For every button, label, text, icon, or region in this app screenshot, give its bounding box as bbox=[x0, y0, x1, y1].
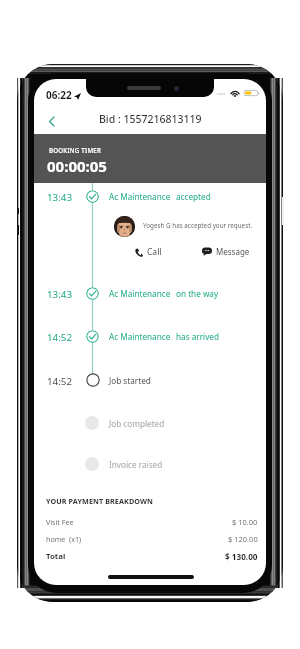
button[interactable]: Job completed bbox=[109, 418, 165, 429]
staticText: Invoice raised bbox=[109, 459, 163, 470]
staticText: BOOKING TIMER bbox=[49, 146, 102, 154]
staticText: Total bbox=[46, 551, 66, 562]
button[interactable]: Back bbox=[38, 106, 64, 136]
staticText: 06:22 bbox=[46, 88, 72, 102]
staticText: Ac Maintenance bbox=[109, 191, 171, 202]
staticText: $ 120.00 bbox=[228, 534, 258, 544]
staticText: 13:43 bbox=[47, 288, 73, 301]
staticText: YOUR PAYMENT BREAKDOWN bbox=[46, 496, 154, 506]
button[interactable]: Call bbox=[135, 246, 162, 258]
button[interactable]: Job started bbox=[109, 375, 151, 386]
staticText: Visit Fee bbox=[46, 517, 74, 527]
staticText: 00:00:05 bbox=[47, 156, 107, 176]
staticText: Ac Maintenance bbox=[109, 288, 171, 299]
staticText: 13:43 bbox=[47, 191, 73, 204]
staticText: 14:52 bbox=[47, 375, 73, 388]
staticText: 14:52 bbox=[47, 331, 73, 344]
staticText: Yogesh G has accepted your request. bbox=[143, 221, 253, 230]
button[interactable]: Invoice raised bbox=[109, 459, 163, 470]
staticText: $ 10.00 bbox=[232, 517, 258, 527]
button[interactable]: Ac Maintenance bbox=[109, 191, 211, 202]
staticText: Job completed bbox=[109, 418, 165, 429]
staticText: Bid : 1557216813119 bbox=[99, 112, 202, 126]
staticText: $ 130.00 bbox=[225, 551, 258, 562]
staticText: has arrived bbox=[176, 331, 219, 342]
staticText: home (x1) bbox=[46, 534, 82, 544]
staticText: Ac Maintenance bbox=[109, 331, 171, 342]
staticText: Call bbox=[147, 246, 162, 258]
button[interactable]: Ac Maintenance bbox=[109, 331, 219, 342]
staticText: Message bbox=[216, 246, 250, 257]
staticText: Job started bbox=[109, 375, 151, 386]
staticText: accepted bbox=[176, 191, 211, 202]
button[interactable]: Ac Maintenance bbox=[109, 288, 219, 299]
button[interactable]: Message bbox=[202, 246, 250, 257]
staticText: on the way bbox=[176, 288, 219, 299]
